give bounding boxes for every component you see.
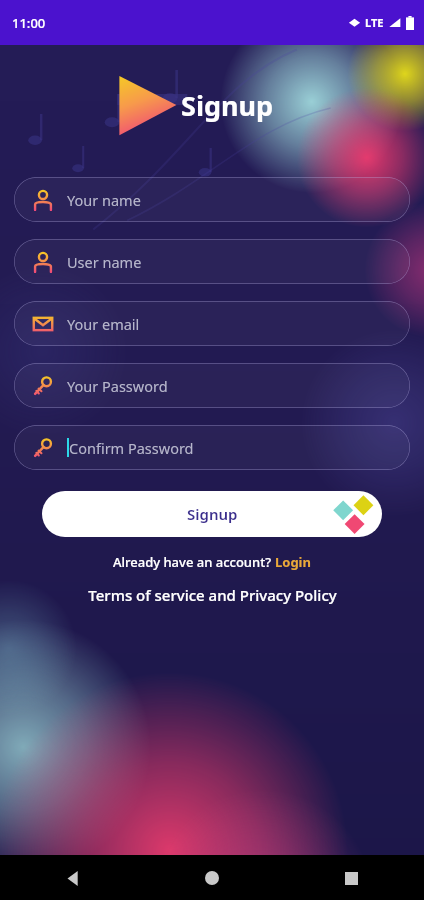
button[interactable]: Your name bbox=[14, 177, 410, 222]
staticText: Your email bbox=[67, 314, 140, 334]
button[interactable]: User name bbox=[14, 239, 410, 284]
button[interactable]: Signup bbox=[42, 491, 382, 537]
staticText: Your Password bbox=[67, 376, 168, 396]
button[interactable]: Recent apps bbox=[334, 861, 368, 895]
staticText: 11:00 bbox=[12, 14, 46, 32]
staticText: Your name bbox=[67, 190, 141, 210]
staticText: Terms of service and Privacy Policy bbox=[88, 585, 337, 605]
staticText: Signup bbox=[181, 87, 274, 124]
staticText: Signup bbox=[187, 504, 238, 524]
staticText: Login bbox=[275, 553, 311, 571]
staticText: Already have an account? bbox=[113, 553, 275, 571]
button[interactable]: Your Password bbox=[14, 363, 410, 408]
button[interactable]: Back bbox=[56, 861, 90, 895]
button[interactable]: Home bbox=[195, 861, 229, 895]
staticText: User name bbox=[67, 252, 142, 272]
button[interactable]: Your email bbox=[14, 301, 410, 346]
button[interactable]: Terms of service and Privacy Policy bbox=[0, 585, 424, 605]
button[interactable]: Confirm Password bbox=[14, 425, 410, 470]
staticText: Confirm Password bbox=[69, 438, 194, 458]
button[interactable]: Already have an account? bbox=[0, 553, 424, 571]
staticText: LTE bbox=[365, 15, 384, 30]
